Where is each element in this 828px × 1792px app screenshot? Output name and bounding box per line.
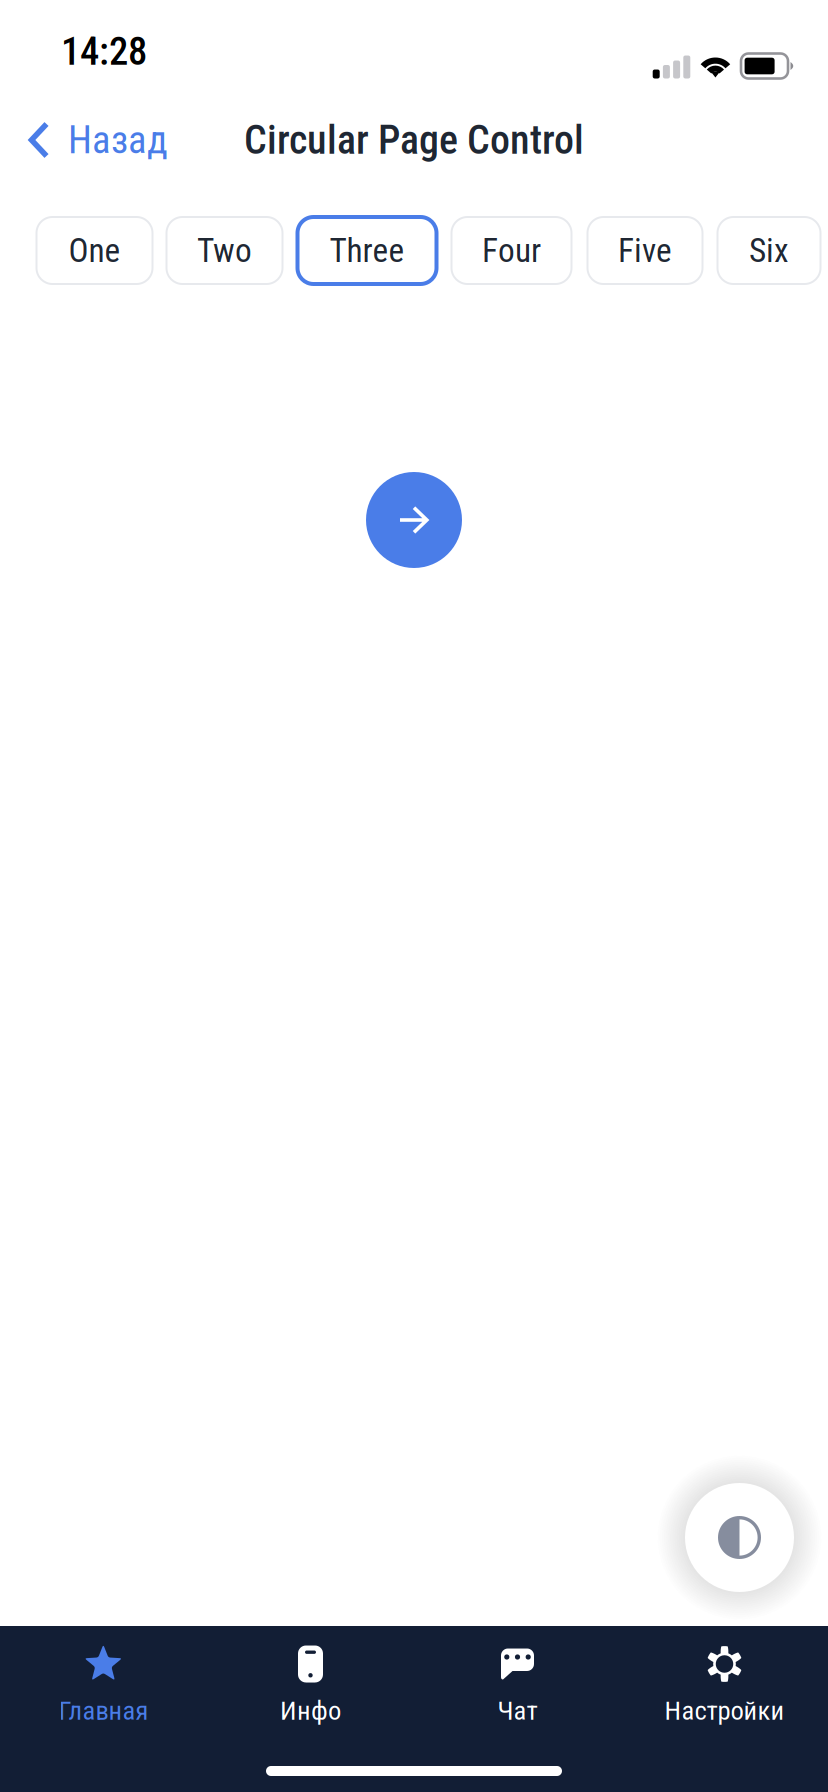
button[interactable]: One xyxy=(36,217,152,284)
staticText: Six xyxy=(749,231,789,270)
staticText: Two xyxy=(197,231,252,270)
button[interactable]: Appearance xyxy=(685,1483,794,1592)
button[interactable]: Next page xyxy=(366,472,462,568)
staticText: Инфо xyxy=(280,1695,341,1726)
button[interactable]: Four xyxy=(451,217,571,284)
staticText: Circular Page Control xyxy=(244,117,584,163)
button[interactable]: Назад xyxy=(0,96,188,184)
button[interactable]: Three xyxy=(297,217,436,284)
staticText: Главная xyxy=(58,1695,148,1726)
button[interactable]: Five xyxy=(587,217,702,284)
staticText: Назад xyxy=(68,117,168,163)
staticText: One xyxy=(68,231,120,270)
staticText: Four xyxy=(482,231,541,270)
button[interactable]: Настройки xyxy=(621,1626,828,1730)
staticText: 14:28 xyxy=(61,29,147,74)
button[interactable]: Six xyxy=(717,217,820,284)
staticText: Настройки xyxy=(664,1695,784,1726)
staticText: Three xyxy=(329,231,404,270)
button[interactable]: Чат xyxy=(414,1626,621,1730)
button[interactable]: Главная xyxy=(0,1626,207,1730)
button[interactable]: Инфо xyxy=(207,1626,414,1730)
staticText: Чат xyxy=(497,1695,537,1726)
button[interactable]: Two xyxy=(166,217,282,284)
staticText: Five xyxy=(618,231,672,270)
